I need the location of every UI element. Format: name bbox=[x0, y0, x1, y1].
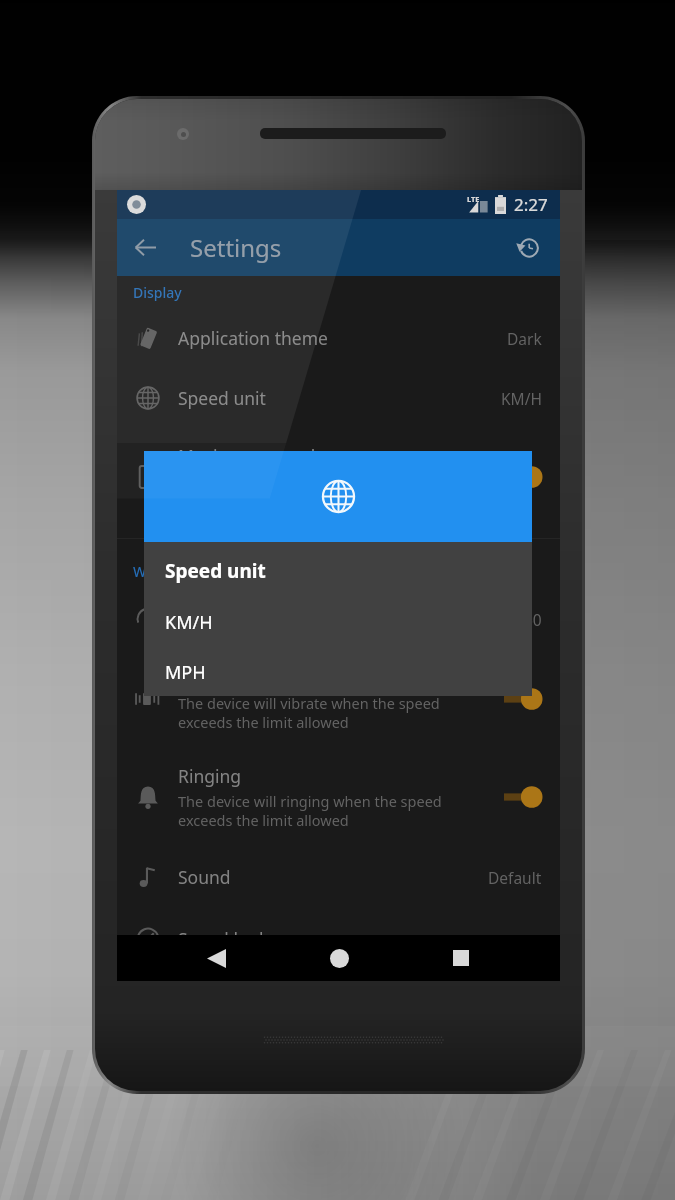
staticText: The device will alert when the speed exc… bbox=[178, 471, 424, 510]
staticText: Speed limit bbox=[178, 607, 270, 631]
staticText: KM/H bbox=[501, 388, 542, 409]
staticText: 60 bbox=[524, 609, 542, 630]
staticText: Speed unit bbox=[178, 386, 266, 410]
button[interactable] bbox=[504, 465, 546, 489]
staticText: Settings bbox=[190, 231, 282, 264]
staticText: Dark bbox=[507, 328, 542, 349]
staticText: Application theme bbox=[178, 326, 328, 350]
staticText: MPH bbox=[165, 660, 206, 685]
button[interactable]: Back bbox=[193, 935, 239, 981]
button[interactable]: Sound bbox=[117, 846, 560, 908]
button[interactable]: KM/H bbox=[144, 596, 532, 648]
button[interactable]: Home bbox=[316, 935, 362, 981]
staticText: Sound bbox=[178, 865, 231, 889]
button[interactable]: History bbox=[499, 219, 556, 276]
button[interactable]: Maximum speed bbox=[117, 428, 560, 526]
button[interactable] bbox=[504, 785, 546, 809]
staticText: The device will ringing when the speed e… bbox=[178, 791, 442, 830]
button[interactable]: Speed look bbox=[117, 908, 560, 970]
button[interactable] bbox=[504, 687, 546, 711]
staticText: Default bbox=[488, 867, 542, 888]
staticText: Display bbox=[133, 283, 182, 302]
staticText: Vibration bbox=[178, 666, 253, 690]
button[interactable]: Ringing bbox=[117, 748, 560, 846]
staticText: KM/H bbox=[165, 610, 213, 635]
button[interactable]: Speed limit bbox=[117, 588, 560, 650]
button[interactable]: Back bbox=[117, 219, 174, 276]
button[interactable]: MPH bbox=[144, 648, 532, 696]
staticText: The device will vibrate when the speed e… bbox=[178, 693, 440, 732]
staticText: Ringing bbox=[178, 764, 242, 788]
button[interactable]: Recents bbox=[438, 935, 484, 981]
staticText: Maximum speed bbox=[178, 444, 316, 468]
staticText: Speed look bbox=[178, 927, 269, 951]
button[interactable]: Vibration bbox=[117, 650, 560, 748]
staticText: 2:27 bbox=[514, 193, 548, 216]
button[interactable]: Speed unit bbox=[117, 368, 560, 428]
staticText: LTE bbox=[467, 194, 480, 204]
button[interactable]: Application theme bbox=[117, 308, 560, 368]
staticText: Speed unit bbox=[165, 558, 266, 584]
staticText: Warnings bbox=[133, 562, 197, 581]
